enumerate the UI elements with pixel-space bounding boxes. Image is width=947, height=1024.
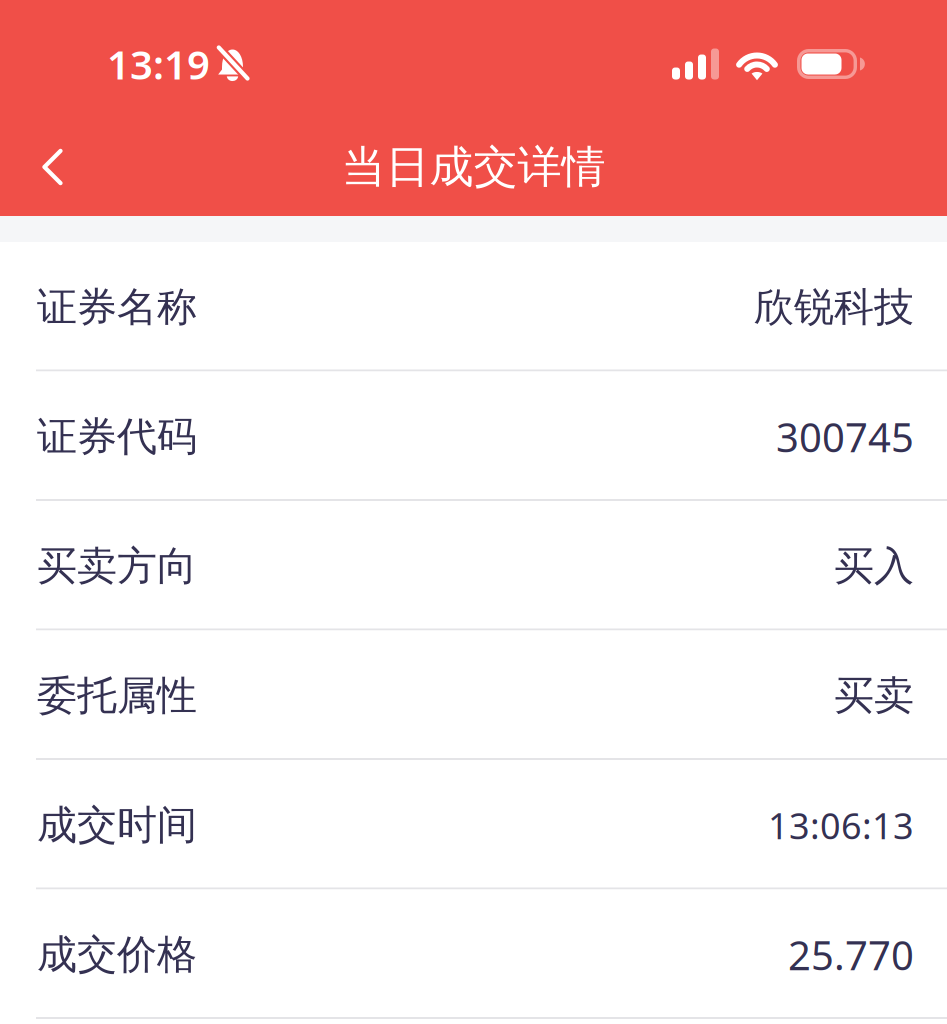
- staticText: 25.770: [788, 928, 914, 981]
- staticText: 证券名称: [37, 283, 197, 332]
- staticText: 13:19: [107, 37, 210, 90]
- staticText: 委托属性: [37, 671, 197, 720]
- staticText: 当日成交详情: [341, 140, 605, 194]
- staticText: 买卖方向: [37, 542, 197, 591]
- staticText: 13:06:13: [768, 801, 914, 849]
- button[interactable]: 返回: [0, 122, 99, 211]
- staticText: 成交时间: [37, 801, 197, 850]
- staticText: 欣锐科技: [754, 283, 914, 332]
- staticText: 成交价格: [37, 930, 197, 979]
- staticText: 300745: [776, 410, 914, 463]
- staticText: 买卖: [834, 671, 914, 720]
- staticText: 证券代码: [37, 412, 197, 461]
- staticText: 买入: [834, 542, 914, 591]
